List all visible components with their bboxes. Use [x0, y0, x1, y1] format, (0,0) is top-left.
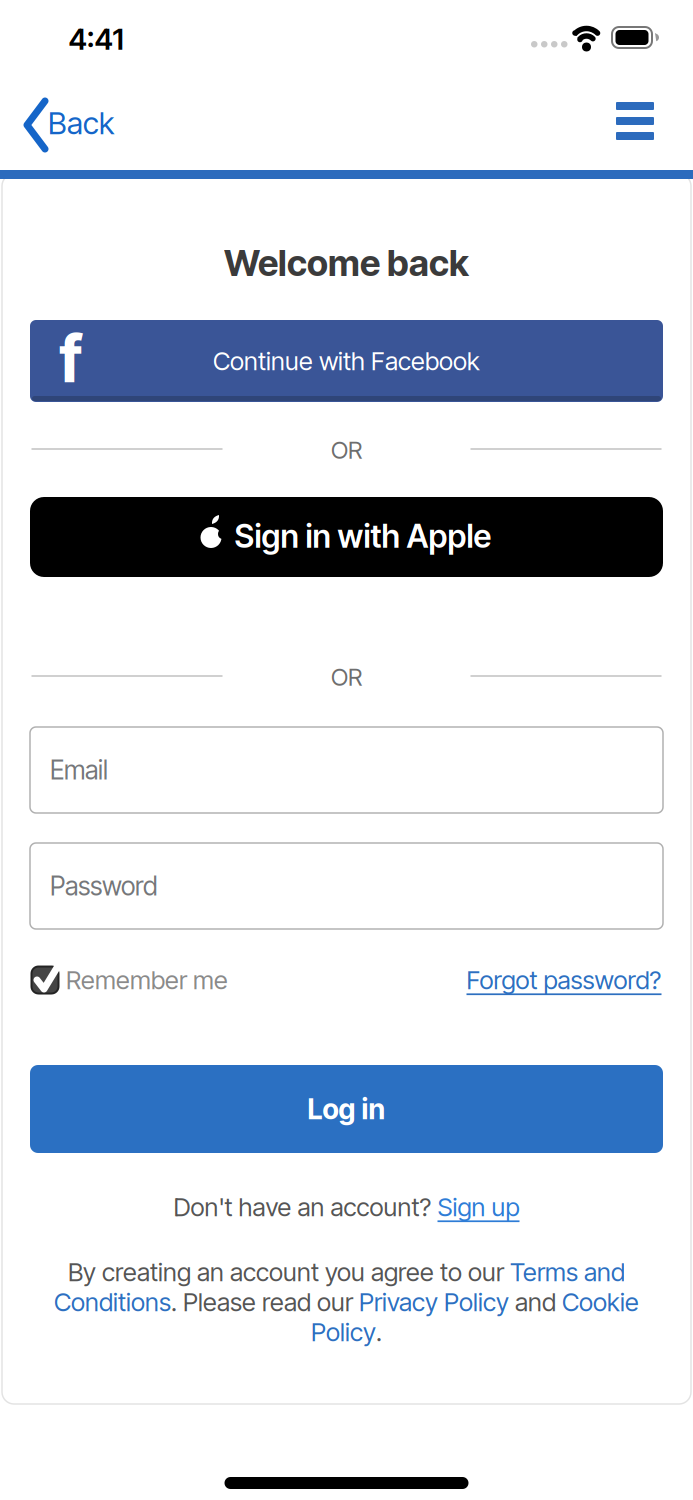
staticText: Forgot password? [466, 965, 661, 995]
button[interactable]: Cookie [562, 1287, 639, 1317]
button[interactable]: Remember me [30, 958, 240, 1002]
staticText: Conditions [54, 1287, 171, 1317]
staticText: Password [50, 870, 158, 902]
staticText: Sign in with Apple [234, 517, 491, 555]
button[interactable]: Back [16, 94, 116, 154]
staticText: Log in [307, 1092, 385, 1126]
staticText: and [509, 1287, 562, 1317]
staticText: By creating an account you agree to our [68, 1257, 510, 1287]
button[interactable]: Conditions [54, 1287, 171, 1317]
staticText: f [59, 320, 82, 398]
button[interactable]: Terms and [510, 1257, 625, 1287]
button[interactable]: Forgot password? [466, 965, 661, 995]
staticText: Privacy Policy [359, 1287, 509, 1317]
staticText: OR [331, 662, 362, 691]
button[interactable] [616, 102, 654, 140]
button[interactable]: Password [30, 843, 663, 929]
button[interactable]: Email [30, 727, 663, 813]
staticText: Continue with Facebook [213, 346, 480, 376]
staticText: . Please read our [171, 1287, 359, 1317]
staticText: Email [50, 754, 108, 786]
staticText: Back [48, 104, 114, 141]
staticText: Policy [311, 1317, 376, 1347]
button[interactable]: Sign in with Apple [30, 497, 663, 577]
staticText: 4:41 [68, 21, 123, 57]
button[interactable]: Policy [311, 1317, 376, 1347]
button[interactable]: f [30, 320, 663, 402]
staticText: Sign up [437, 1192, 519, 1222]
staticText: Don't have an account? [173, 1192, 437, 1222]
button[interactable]: Sign up [437, 1192, 519, 1222]
button[interactable]: Privacy Policy [359, 1287, 509, 1317]
staticText: Welcome back [224, 241, 469, 285]
staticText: Cookie [562, 1287, 639, 1317]
staticText: Terms and [510, 1257, 625, 1287]
button[interactable]: Log in [30, 1065, 663, 1153]
staticText: Remember me [66, 965, 228, 995]
staticText: OR [331, 435, 362, 464]
staticText: . [376, 1317, 382, 1347]
